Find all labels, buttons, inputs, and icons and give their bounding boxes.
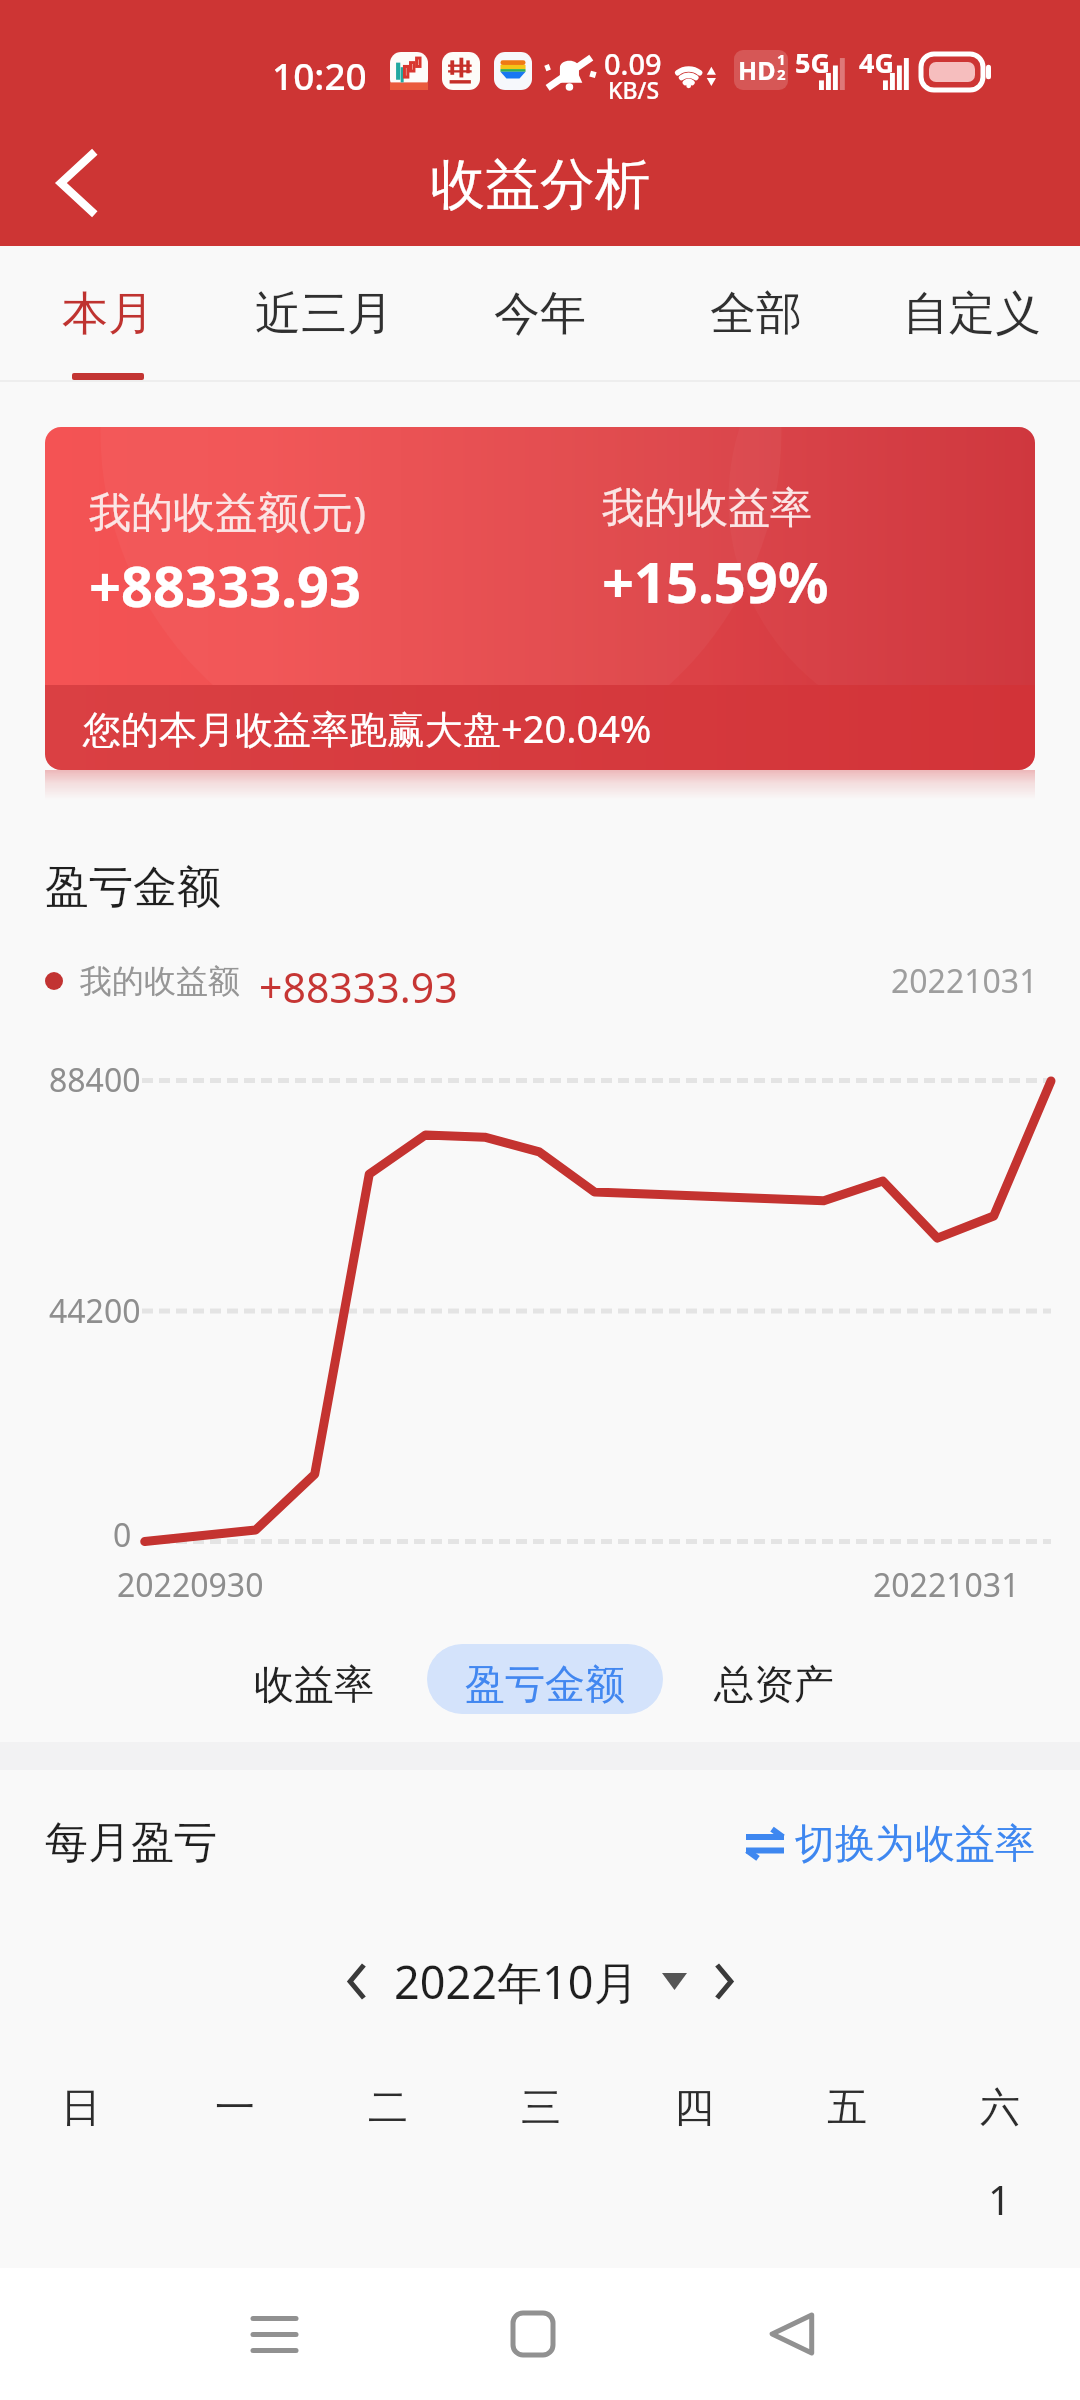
staticText: +88333.93 — [89, 547, 361, 623]
staticText: 1 — [988, 2172, 1011, 2222]
staticText: KB/S — [608, 74, 660, 105]
button[interactable]: 1 — [923, 2172, 1076, 2222]
staticText: 收益分析 — [430, 150, 650, 219]
staticText: 三 — [521, 2082, 561, 2132]
button[interactable]: 我的收益额(元) — [45, 427, 1035, 770]
staticText: 每月盈亏 — [45, 1816, 217, 1870]
staticText: HD — [738, 53, 776, 87]
button[interactable]: 收益率 — [234, 1644, 394, 1714]
staticText: 五 — [827, 2082, 867, 2132]
staticText: 20221031 — [873, 1563, 1020, 1607]
staticText: 20221031 — [891, 959, 1038, 1003]
button[interactable]: 2022年10月 — [394, 1948, 687, 2014]
staticText: 0 — [113, 1513, 132, 1557]
staticText: 10:20 — [272, 50, 367, 100]
button[interactable]: Previous month — [320, 1948, 394, 2014]
button[interactable]: 本月 — [0, 246, 216, 382]
staticText: 自定义 — [903, 285, 1041, 343]
staticText: 44200 — [49, 1289, 141, 1333]
staticText: 88400 — [49, 1058, 141, 1102]
staticText: 我的收益额(元) — [89, 482, 367, 539]
staticText: 一 — [215, 2082, 255, 2132]
button[interactable]: 今年 — [432, 246, 648, 382]
button[interactable]: 近三月 — [216, 246, 432, 382]
staticText: 4G — [859, 44, 894, 81]
staticText: 四 — [674, 2082, 714, 2132]
staticText: 1 — [777, 50, 786, 69]
button[interactable]: 切换为收益率 — [745, 1818, 1035, 1868]
staticText: 近三月 — [255, 285, 393, 343]
staticText: 5G — [795, 44, 830, 81]
staticText: 今年 — [494, 285, 586, 343]
button[interactable]: 自定义 — [864, 246, 1080, 382]
staticText: +88333.93 — [259, 959, 458, 1003]
button[interactable]: Next month — [687, 1948, 761, 2014]
staticText: 本月 — [62, 285, 154, 343]
staticText: +15.59% — [602, 543, 829, 619]
button[interactable]: Home — [468, 2268, 598, 2400]
staticText: 收益率 — [254, 1659, 374, 1709]
button[interactable]: Recents — [209, 2268, 339, 2400]
staticText: 20220930 — [117, 1563, 264, 1607]
staticText: 您的本月收益率跑赢大盘+20.04% — [83, 702, 652, 754]
staticText: 0.09 — [604, 44, 662, 83]
button[interactable]: Back — [0, 120, 152, 246]
staticText: 盈亏金额 — [45, 860, 221, 915]
staticText: 六 — [980, 2082, 1020, 2132]
staticText: 日 — [61, 2082, 101, 2132]
button[interactable]: 总资产 — [694, 1644, 854, 1714]
staticText: 2022年10月 — [394, 1951, 639, 2012]
staticText: 总资产 — [714, 1659, 834, 1709]
staticText: 盈亏金额 — [465, 1659, 625, 1709]
staticText: 2 — [777, 64, 786, 84]
staticText: 二 — [368, 2082, 408, 2132]
staticText: 切换为收益率 — [795, 1818, 1035, 1868]
staticText: 我的收益率 — [602, 482, 812, 535]
staticText: 我的收益额 — [80, 961, 240, 1001]
staticText: 全部 — [710, 285, 802, 343]
button[interactable]: Back — [726, 2268, 856, 2400]
button[interactable]: 盈亏金额 — [427, 1644, 663, 1714]
button[interactable]: 全部 — [648, 246, 864, 382]
